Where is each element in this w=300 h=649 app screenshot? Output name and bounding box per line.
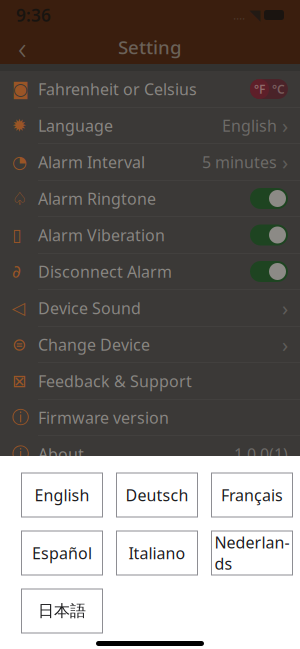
staticText: ⊜	[12, 335, 27, 354]
staticText: Change Device	[38, 334, 150, 355]
button[interactable]: ◁	[0, 290, 300, 326]
staticText: English	[222, 115, 277, 136]
staticText: English	[34, 484, 89, 506]
staticText: ▯	[12, 225, 22, 245]
button[interactable]: ◔	[0, 144, 300, 180]
staticText: ◁	[12, 298, 25, 318]
staticText: °F	[254, 81, 265, 97]
staticText: Setting	[118, 35, 182, 59]
staticText: 5 minutes	[202, 151, 277, 173]
staticText: Device Sound	[38, 297, 141, 319]
button[interactable]: Deutsch	[116, 473, 197, 517]
button[interactable]: ◙	[0, 71, 300, 107]
button[interactable]: ♤	[0, 180, 300, 216]
staticText: Alarm Interval	[38, 151, 145, 173]
staticText: About	[38, 443, 84, 465]
staticText: ›	[282, 112, 288, 139]
button[interactable]: Français	[211, 473, 292, 517]
staticText: Disconnect Alarm	[38, 261, 172, 282]
staticText: Language	[38, 115, 113, 136]
staticText: Deutsch	[125, 484, 188, 506]
button[interactable]: ✹	[0, 107, 300, 143]
staticText: °C	[272, 81, 285, 97]
button[interactable]: Nederlands	[211, 531, 292, 575]
staticText: Español	[32, 542, 92, 564]
staticText: Firmware version	[38, 407, 169, 428]
button[interactable]: ∂	[0, 253, 300, 289]
staticText: ‹	[18, 26, 26, 68]
button[interactable]: English	[21, 473, 102, 517]
staticText: 日本語	[38, 601, 86, 621]
staticText: 9:36	[16, 3, 51, 26]
button[interactable]: ▯	[0, 217, 300, 253]
button[interactable]: 日本語	[21, 589, 102, 633]
staticText: ⓘ	[12, 407, 29, 428]
staticText: Alarm Ringtone	[38, 188, 156, 209]
button[interactable]: ⓘ	[0, 399, 300, 435]
staticText: ◔	[12, 152, 27, 172]
staticText: ◙	[12, 79, 29, 99]
button[interactable]: Back	[0, 30, 44, 64]
staticText: Alarm Viberation	[38, 224, 165, 246]
staticText: ∂	[12, 262, 21, 281]
staticText: ✹	[12, 116, 27, 135]
staticText: ›	[282, 331, 288, 358]
staticText: 1.0.0(1)	[234, 443, 288, 465]
staticText: ⓘ	[12, 443, 29, 465]
staticText: ....	[233, 7, 245, 23]
staticText: ›	[282, 295, 288, 321]
button[interactable]: Español	[21, 531, 102, 575]
staticText: ♤	[12, 189, 28, 208]
button[interactable]: ⊜	[0, 326, 300, 362]
staticText: Nederlands	[214, 532, 289, 574]
staticText: ◥	[249, 7, 260, 23]
staticText: Feedback & Support	[38, 370, 192, 392]
staticText: Français	[221, 484, 283, 506]
staticText: ⊠	[12, 371, 27, 391]
button[interactable]: ⓘ	[0, 436, 300, 472]
button[interactable]: ⊠	[0, 363, 300, 399]
staticText: Italiano	[128, 542, 185, 564]
staticText: ›	[282, 149, 288, 175]
button[interactable]: Italiano	[116, 531, 197, 575]
staticText: Fahrenheit or Celsius	[38, 78, 197, 100]
